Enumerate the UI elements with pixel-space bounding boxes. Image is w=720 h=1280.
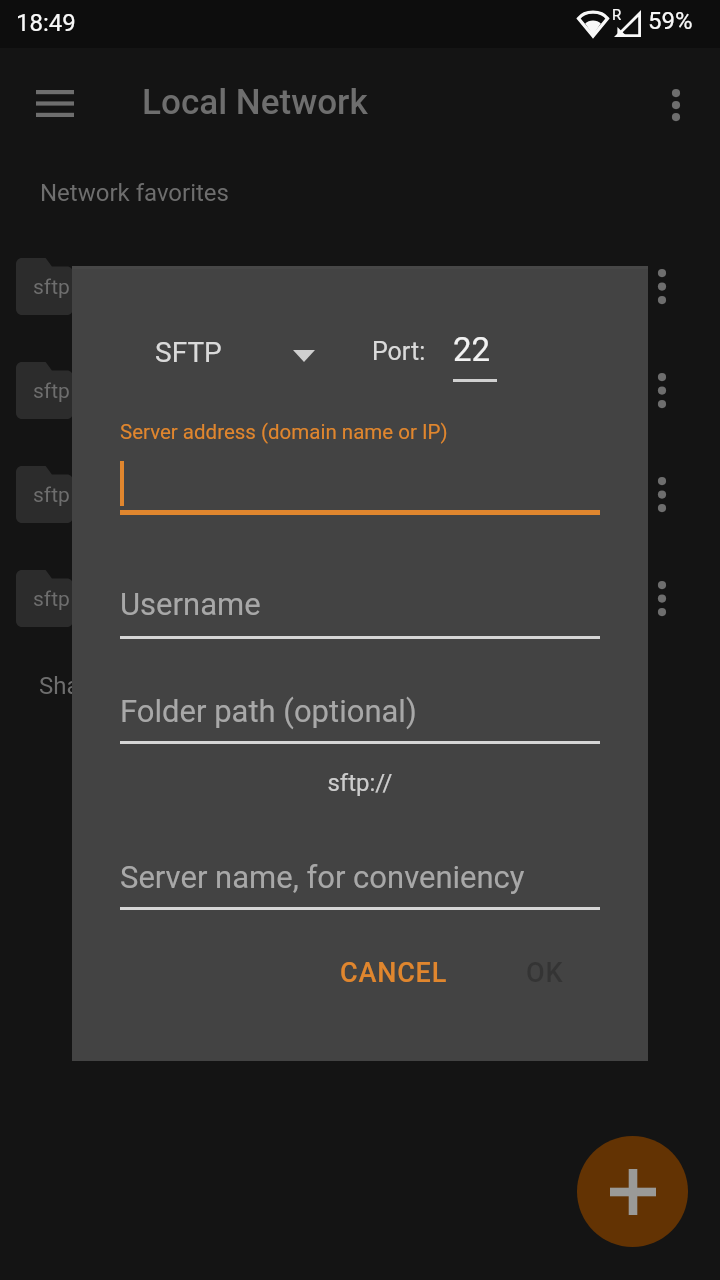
- staticText: sftp: [33, 379, 70, 404]
- staticText: sftp: [33, 587, 70, 612]
- button[interactable]: Item options: [637, 365, 687, 415]
- staticText: Network favorites: [40, 179, 229, 207]
- button[interactable]: sftp: [0, 564, 720, 668]
- button[interactable]: Folder path (optional): [118, 693, 600, 751]
- button[interactable]: sftp: [0, 460, 720, 564]
- button[interactable]: Server name, for conveniency: [118, 859, 600, 917]
- staticText: sftp: [33, 275, 70, 300]
- button[interactable]: CANCEL: [329, 944, 459, 1002]
- staticText: Server name, for conveniency: [120, 859, 525, 895]
- staticText: Folder path (optional): [120, 693, 417, 729]
- button[interactable]: More options: [651, 80, 701, 130]
- button[interactable]: Username: [118, 586, 600, 644]
- staticText: Shared folders: [39, 672, 195, 700]
- button[interactable]: sftp: [0, 252, 720, 356]
- button[interactable]: Item options: [637, 469, 687, 519]
- button[interactable]: SFTP: [132, 324, 332, 380]
- button[interactable]: [120, 456, 600, 516]
- button[interactable]: sftp: [0, 356, 720, 460]
- staticText: 59%: [648, 7, 693, 35]
- button[interactable]: 22: [451, 328, 501, 384]
- button[interactable]: Item options: [637, 573, 687, 623]
- staticText: sftp: [33, 483, 70, 508]
- staticText: OK: [526, 957, 564, 989]
- button[interactable]: Item options: [637, 261, 687, 311]
- staticText: 22: [453, 330, 491, 369]
- button[interactable]: Add server: [577, 1136, 688, 1247]
- staticText: Local Network: [142, 82, 368, 123]
- staticText: SFTP: [155, 336, 222, 369]
- button[interactable]: Navigation menu: [30, 78, 80, 128]
- staticText: sftp://: [72, 769, 648, 797]
- staticText: Port:: [372, 337, 426, 366]
- button[interactable]: OK: [507, 944, 582, 1002]
- staticText: 18:49: [16, 9, 76, 37]
- staticText: Server address (domain name or IP): [120, 420, 448, 444]
- staticText: R: [612, 6, 622, 24]
- staticText: CANCEL: [340, 957, 448, 989]
- staticText: Username: [120, 586, 261, 622]
